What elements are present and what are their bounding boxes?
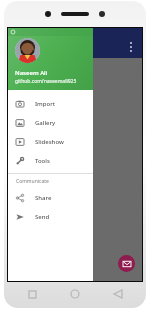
staticText: Share	[35, 194, 52, 202]
button[interactable]: Recent apps	[21, 283, 43, 305]
button[interactable]: Home	[64, 283, 86, 305]
button[interactable]: More options	[123, 39, 139, 55]
button[interactable]: Tools	[8, 151, 93, 170]
staticText: Import	[35, 100, 56, 108]
staticText: Send	[35, 213, 50, 221]
staticText: Slideshow	[35, 138, 64, 146]
staticText: Tools	[35, 157, 50, 165]
staticText: Naseem Ali	[15, 69, 48, 77]
button[interactable]: Slideshow	[8, 132, 93, 151]
button[interactable]: Gallery	[8, 113, 93, 132]
staticText: Gallery	[35, 119, 56, 127]
staticText: github.com/naseemali925	[15, 78, 77, 85]
button[interactable]: Compose email	[118, 255, 135, 272]
button[interactable]: Import	[8, 94, 93, 113]
button[interactable]: Send	[8, 207, 93, 226]
staticText: Communicate	[16, 178, 49, 185]
button[interactable]: Share	[8, 188, 93, 207]
button[interactable]: Back	[107, 283, 129, 305]
